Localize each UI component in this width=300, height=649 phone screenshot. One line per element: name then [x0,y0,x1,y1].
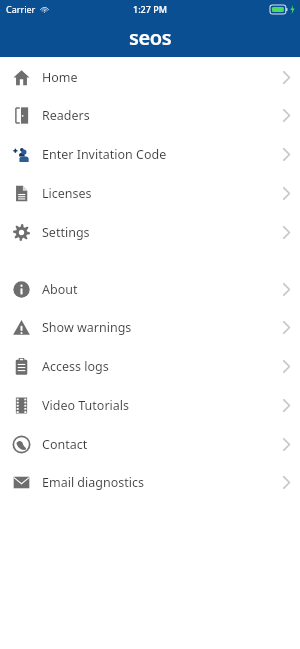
button[interactable]: Settings [0,213,300,252]
button[interactable]: Video Tutorials [0,386,300,425]
button[interactable]: Email diagnostics [0,463,300,502]
staticText: Licenses [42,185,272,202]
staticText: Readers [42,107,272,124]
button[interactable]: Show warnings [0,308,300,347]
staticText: Contact [42,436,272,453]
staticText: Email diagnostics [42,474,272,491]
button[interactable]: Home [0,58,300,96]
staticText: Settings [42,224,272,241]
staticText: seos [129,24,172,51]
button[interactable]: Access logs [0,347,300,386]
staticText: Enter Invitation Code [42,146,272,163]
button[interactable]: Licenses [0,174,300,213]
staticText: Show warnings [42,319,272,336]
staticText: Video Tutorials [42,397,272,414]
button[interactable]: Enter Invitation Code [0,135,300,174]
staticText: 1:27 PM [133,3,167,15]
button[interactable]: About [0,270,300,308]
button[interactable]: Readers [0,96,300,135]
staticText: Carrier [6,3,36,15]
staticText: Access logs [42,358,272,375]
staticText: Home [42,69,272,86]
button[interactable]: Contact [0,425,300,463]
staticText: About [42,281,272,298]
